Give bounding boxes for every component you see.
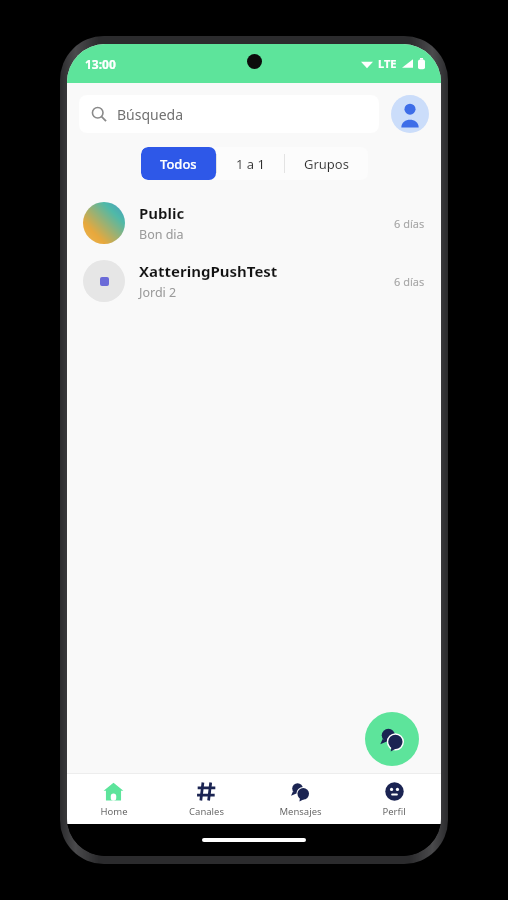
button[interactable]: Canales xyxy=(160,774,253,824)
staticText: Bon dia xyxy=(139,226,184,243)
button[interactable]: 1 a 1 xyxy=(217,147,284,180)
staticText: Mensajes xyxy=(279,805,322,818)
button[interactable]: Perfil de usuario xyxy=(391,95,429,133)
button[interactable]: Public xyxy=(67,194,441,252)
staticText: Public xyxy=(139,203,185,223)
staticText: XatteringPushTest xyxy=(139,261,278,281)
button[interactable]: Grupos xyxy=(285,147,368,180)
button[interactable]: Perfil xyxy=(347,774,441,824)
staticText: Canales xyxy=(189,805,224,818)
staticText: 6 días xyxy=(394,274,425,289)
staticText: 13:00 xyxy=(85,56,116,72)
staticText: LTE xyxy=(378,56,397,71)
button[interactable]: Todos xyxy=(141,147,216,180)
staticText: Búsqueda xyxy=(117,105,184,124)
staticText: 6 días xyxy=(394,216,425,231)
button[interactable]: XatteringPushTest xyxy=(67,252,441,310)
staticText: Home xyxy=(100,805,128,818)
staticText: Grupos xyxy=(304,155,349,173)
staticText: Perfil xyxy=(382,805,406,818)
button[interactable]: Mensajes xyxy=(253,774,347,824)
button[interactable]: Búsqueda xyxy=(79,95,379,133)
staticText: 1 a 1 xyxy=(236,155,265,173)
staticText: Todos xyxy=(160,155,197,173)
button[interactable]: Nuevo mensaje xyxy=(365,712,419,766)
button[interactable]: Home xyxy=(67,774,160,824)
staticText: Jordi 2 xyxy=(139,284,177,301)
